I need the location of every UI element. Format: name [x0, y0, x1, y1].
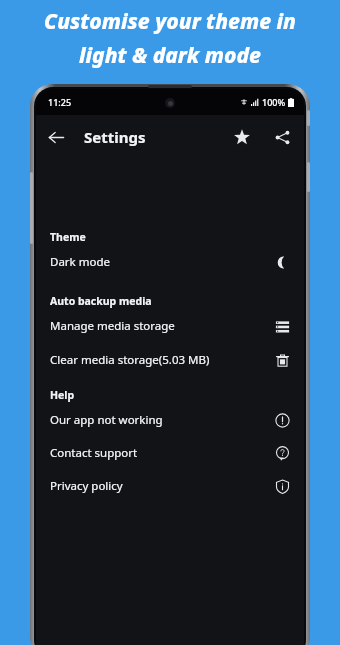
button[interactable]: Back	[36, 117, 76, 157]
button[interactable]: Contact support	[36, 440, 304, 466]
button[interactable]: Our app not working	[36, 407, 304, 433]
button[interactable]: Manage media storage	[36, 313, 304, 339]
staticText: Auto backup media	[50, 294, 152, 308]
button[interactable]: Share	[262, 117, 302, 157]
staticText: Our app not working	[50, 412, 163, 428]
staticText: Theme	[50, 230, 86, 244]
staticText: Manage media storage	[50, 318, 175, 334]
staticText: light & dark mode	[79, 41, 261, 70]
button[interactable]: Clear media storage(5.03 MB)	[36, 347, 304, 373]
button[interactable]: Privacy policy	[36, 473, 304, 499]
staticText: Privacy policy	[50, 478, 123, 494]
staticText: 11:25	[48, 96, 72, 108]
staticText: Customise your theme in	[44, 7, 296, 36]
staticText: Contact support	[50, 445, 138, 461]
button[interactable]: Favourite	[222, 117, 262, 157]
staticText: Help	[50, 388, 75, 402]
staticText: Clear media storage(5.03 MB)	[50, 352, 210, 368]
staticText: Settings	[84, 127, 146, 147]
staticText: Dark mode	[50, 254, 110, 270]
button[interactable]: Dark mode	[36, 249, 304, 275]
staticText: 100%	[262, 96, 286, 108]
